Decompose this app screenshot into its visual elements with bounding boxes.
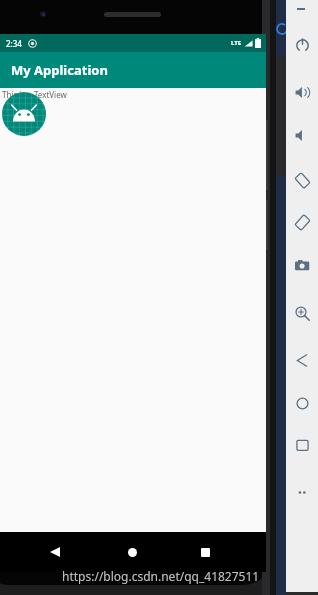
button[interactable]: Home (119, 539, 145, 565)
button[interactable]: More (292, 482, 312, 502)
button[interactable]: Home (292, 393, 312, 413)
button[interactable]: Zoom (292, 303, 312, 323)
button[interactable]: Rotate right (292, 212, 312, 232)
button[interactable]: Back (42, 539, 68, 565)
button[interactable]: Take screenshot (292, 255, 312, 275)
staticText: LTE (231, 39, 242, 47)
button[interactable]: Volume up (292, 82, 312, 102)
staticText: This is a TextView (2, 89, 67, 100)
button[interactable]: Back (292, 350, 312, 370)
button[interactable]: Rotate left (292, 170, 312, 190)
button[interactable]: Overview (292, 435, 312, 455)
button[interactable]: Volume down (292, 125, 312, 145)
staticText: 2:34 (6, 38, 22, 49)
button[interactable]: Android logo (2, 92, 46, 136)
button[interactable]: My Application (0, 52, 266, 88)
staticText: https://blog.csdn.net/qq_41827511 (62, 568, 260, 584)
staticText: My Application (11, 61, 108, 79)
button[interactable]: Recent apps (192, 539, 218, 565)
button[interactable]: Power (292, 35, 312, 55)
